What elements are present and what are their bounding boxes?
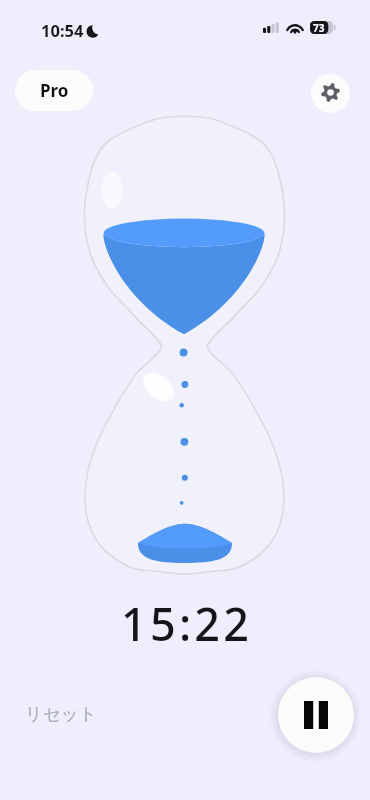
staticText: 73 [313, 21, 325, 34]
button[interactable]: Settings [311, 74, 350, 113]
staticText: 10:54 [41, 19, 84, 41]
staticText: 15:22 [121, 593, 253, 654]
staticText: Pro [40, 79, 69, 102]
button[interactable]: リセット [15, 695, 107, 733]
staticText: リセット [25, 703, 97, 725]
button[interactable]: Pause [278, 677, 354, 753]
button[interactable]: Pro [15, 70, 93, 111]
